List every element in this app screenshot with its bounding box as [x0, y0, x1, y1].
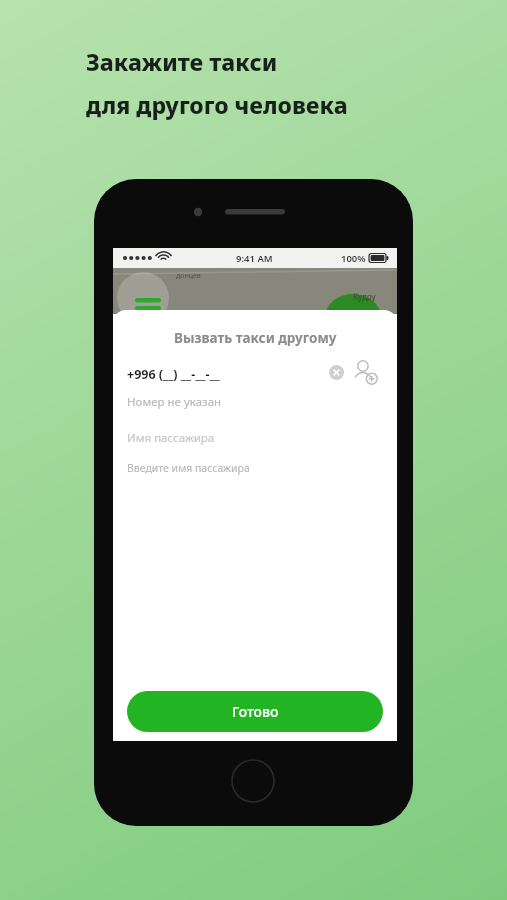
staticText: Кудру	[353, 291, 376, 302]
button[interactable]: Готово	[127, 691, 383, 732]
staticText: +996 (__) __-__-__	[127, 366, 220, 383]
staticText: Вызвать такси другому	[174, 329, 337, 347]
staticText: 9:41 AM	[236, 252, 273, 265]
staticText: донцев	[176, 271, 201, 281]
button[interactable]: Выбрать контакт	[349, 356, 381, 388]
staticText: Введите имя пассажира	[127, 461, 250, 475]
staticText: Имя пассажира	[127, 430, 215, 446]
button[interactable]: Имя пассажира	[113, 426, 397, 452]
button[interactable]: Очистить	[324, 360, 348, 384]
staticText: для другого человека	[86, 89, 348, 120]
staticText: 100%	[341, 252, 366, 265]
button[interactable]: Номер не указан	[113, 390, 397, 416]
staticText: Закажите такси	[86, 46, 278, 77]
button[interactable]: Введите имя пассажира	[113, 457, 397, 483]
staticText: Номер не указан	[127, 394, 222, 410]
staticText: Готово	[232, 702, 279, 721]
